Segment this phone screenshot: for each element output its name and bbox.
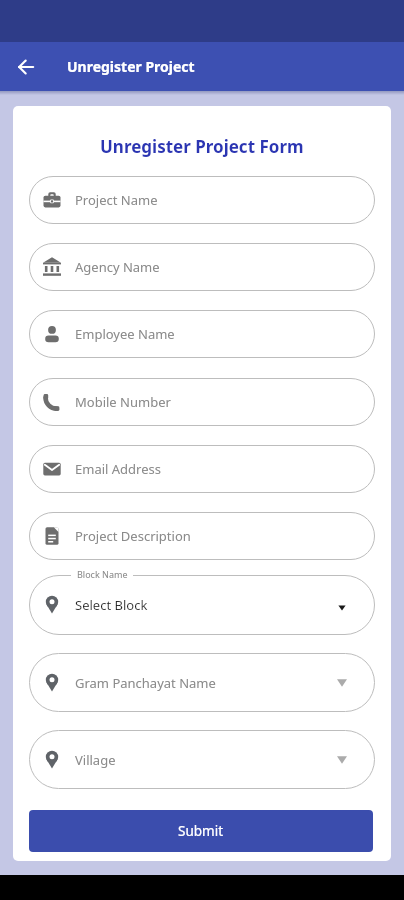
staticText: Village (75, 751, 116, 769)
button[interactable]: Mobile Number (29, 378, 375, 426)
button[interactable]: Village (29, 730, 375, 789)
staticText: Mobile Number (75, 393, 171, 411)
button[interactable]: Project Name (29, 176, 375, 224)
button[interactable]: Email Address (29, 445, 375, 493)
staticText: Select Block (75, 596, 148, 614)
button[interactable]: Gram Panchayat Name (29, 653, 375, 712)
staticText: Submit (178, 822, 224, 840)
button[interactable]: Employee Name (29, 310, 375, 358)
staticText: Project Description (75, 527, 191, 545)
staticText: Block Name (77, 568, 128, 580)
button[interactable]: Agency Name (29, 243, 375, 291)
button[interactable]: Select Block (29, 575, 375, 635)
button[interactable]: Project Description (29, 512, 375, 560)
staticText: Agency Name (75, 258, 160, 276)
staticText: Unregister Project Form (100, 135, 304, 158)
staticText: Employee Name (75, 325, 175, 343)
staticText: Unregister Project (67, 57, 195, 76)
staticText: Project Name (75, 191, 158, 209)
button[interactable]: Submit (29, 810, 373, 852)
staticText: Email Address (75, 460, 161, 478)
button[interactable] (0, 42, 52, 91)
staticText: Gram Panchayat Name (75, 674, 216, 692)
